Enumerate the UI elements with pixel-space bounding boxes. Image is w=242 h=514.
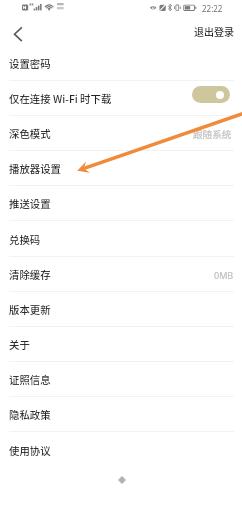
button[interactable]: 隐私政策: [0, 397, 242, 432]
staticText: 播放器设置: [9, 161, 61, 176]
staticText: 22:22: [202, 3, 223, 14]
button[interactable]: 设置密码: [0, 46, 242, 81]
button[interactable]: 仅在连接 Wi-Fi 时下载: [0, 81, 242, 116]
staticText: 仅在连接 Wi-Fi 时下载: [9, 91, 112, 106]
button[interactable]: 使用协议: [0, 433, 242, 468]
staticText: 设置密码: [9, 56, 51, 71]
staticText: 清除缓存: [9, 267, 51, 282]
staticText: 版本更新: [9, 302, 51, 317]
staticText: 深色模式: [9, 126, 51, 141]
button[interactable]: 播放器设置: [0, 151, 242, 186]
button[interactable]: 深色模式: [0, 116, 242, 151]
button[interactable]: 清除缓存: [0, 257, 242, 292]
staticText: 推送设置: [9, 196, 51, 211]
button[interactable]: 兑换码: [0, 222, 242, 257]
staticText: 证照信息: [9, 372, 51, 387]
button[interactable]: Wi-Fi only download toggle: [192, 86, 230, 103]
staticText: 兑换码: [9, 232, 41, 247]
staticText: 跟随系统: [193, 127, 232, 141]
staticText: 0MB: [214, 269, 234, 281]
button[interactable]: Back: [0, 16, 30, 46]
staticText: 使用协议: [9, 443, 51, 458]
button[interactable]: 关于: [0, 327, 242, 362]
button[interactable]: 退出登录: [188, 20, 242, 42]
button[interactable]: 推送设置: [0, 186, 242, 221]
staticText: 关于: [9, 337, 30, 352]
button[interactable]: 版本更新: [0, 292, 242, 327]
button[interactable]: 证照信息: [0, 362, 242, 397]
staticText: 隐私政策: [9, 407, 51, 422]
